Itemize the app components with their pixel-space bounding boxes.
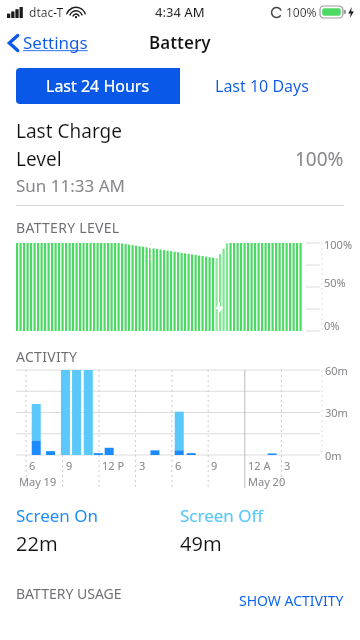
staticText: 100% [286,4,317,20]
button[interactable]: Last 24 Hours [16,68,180,104]
staticText: 100% [324,237,353,252]
staticText: 50% [324,275,346,290]
staticText: 6 [29,458,36,473]
staticText: Level [16,146,62,172]
button[interactable]: Settings [0,27,96,58]
staticText: Last 10 Days [215,75,309,97]
staticText: 0% [324,318,340,333]
button[interactable]: Screen On [16,504,180,557]
staticText: May 19 [19,474,57,489]
staticText: BATTERY USAGE [16,584,122,603]
staticText: 12 A [248,458,271,473]
button[interactable]: Screen Off [180,504,344,557]
staticText: 60m [325,363,348,378]
staticText: Last 24 Hours [46,75,150,97]
staticText: 3 [139,458,146,473]
staticText: 30m [325,405,348,420]
staticText: 9 [211,458,218,473]
staticText: Last Charge [16,118,122,144]
staticText: 6 [175,458,182,473]
staticText: May 20 [248,474,286,489]
staticText: SHOW ACTIVITY [239,591,344,610]
staticText: Screen Off [180,504,264,527]
staticText: 0m [325,448,342,463]
staticText: 49m [180,530,222,557]
staticText: 4:34 AM [155,3,205,21]
staticText: 12 P [102,458,125,473]
staticText: Battery [149,31,211,54]
staticText: dtac-T [29,4,64,20]
staticText: 100% [295,146,344,172]
staticText: 22m [16,530,58,557]
staticText: ACTIVITY [16,347,78,366]
button[interactable]: SHOW ACTIVITY [239,577,344,610]
button[interactable]: Last 10 Days [180,68,344,104]
staticText: 3 [284,458,291,473]
staticText: Settings [23,31,88,54]
staticText: BATTERY LEVEL [16,218,120,237]
staticText: Screen On [16,504,99,527]
staticText: 9 [66,458,73,473]
staticText: Sun 11:33 AM [16,174,125,197]
